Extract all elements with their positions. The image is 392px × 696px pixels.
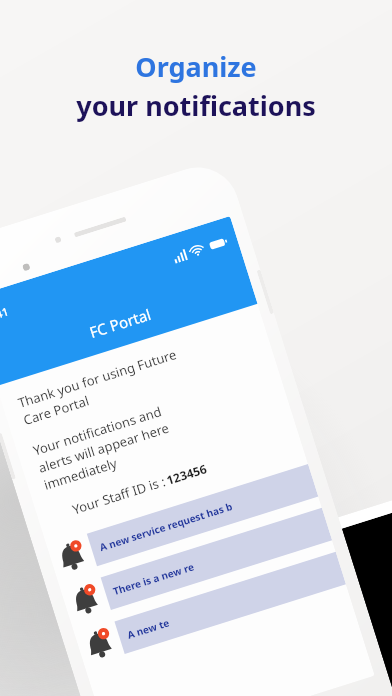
staticText: your notifications xyxy=(76,87,316,124)
button[interactable]: Notification bell xyxy=(74,552,346,666)
staticText: 9:41 xyxy=(0,303,10,324)
button[interactable] xyxy=(286,488,392,696)
button[interactable]: Notification bell xyxy=(61,508,332,623)
button[interactable]: Notification bell xyxy=(47,464,318,579)
staticText: Organize xyxy=(135,48,257,85)
staticText: A new service request has b xyxy=(97,499,234,554)
other: Notification bell xyxy=(61,578,111,623)
staticText: 123456 xyxy=(164,460,209,488)
other: Notification bell xyxy=(47,534,97,579)
staticText: A new te xyxy=(125,615,171,642)
staticText: Thank you for using Future Care Portal xyxy=(16,345,184,429)
other: Notification bell xyxy=(74,621,125,667)
staticText: Your notifications and alerts will appea… xyxy=(31,401,177,494)
staticText: FC Portal xyxy=(86,304,154,342)
staticText: Your Staff ID is : xyxy=(68,472,169,519)
staticText: There is a new re xyxy=(111,559,196,598)
button[interactable]: 9:41 xyxy=(0,157,392,696)
